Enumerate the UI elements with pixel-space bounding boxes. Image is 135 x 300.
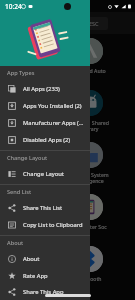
staticText: About bbox=[7, 239, 24, 247]
staticText: Apps You Installed (2) bbox=[23, 102, 82, 110]
staticText: Change Layout bbox=[7, 154, 48, 162]
staticText: All Apps (233) bbox=[23, 85, 60, 93]
staticText: Share This App bbox=[23, 288, 64, 296]
staticText: Bluetooth bbox=[77, 275, 102, 282]
staticText: Disabled Apps (2) bbox=[23, 136, 71, 144]
button[interactable]: Disabled Apps (2) bbox=[0, 131, 90, 148]
button[interactable]: About bbox=[0, 250, 90, 267]
button[interactable]: Copy List to Clipboard bbox=[0, 216, 90, 233]
button[interactable]: Share This App bbox=[0, 284, 90, 300]
button[interactable]: All Apps (233) bbox=[0, 80, 90, 97]
button[interactable]: Bluetooth bbox=[0, 242, 135, 294]
button[interactable]: Change Layout bbox=[0, 165, 90, 182]
staticText: Rate App bbox=[23, 272, 48, 280]
staticText: About bbox=[23, 255, 40, 263]
button[interactable]: Rate App bbox=[0, 267, 90, 284]
staticText: Send List bbox=[7, 188, 32, 196]
staticText: DESC bbox=[85, 20, 99, 27]
staticText: Android System Intelligence bbox=[70, 171, 109, 184]
button[interactable]: Android Shared Library bbox=[0, 86, 135, 138]
button[interactable]: Manufacturer Apps (231) bbox=[0, 114, 90, 131]
button[interactable]: Share This List bbox=[0, 199, 90, 216]
button[interactable]: Apps You Installed (2) bbox=[0, 97, 90, 114]
staticText: App-Lister Soc bbox=[72, 223, 107, 230]
staticText: Android Shared Library bbox=[71, 119, 109, 132]
staticText: Copy List to Clipboard bbox=[23, 221, 83, 229]
button[interactable]: DESC bbox=[76, 17, 108, 30]
staticText: Android Auto bbox=[73, 67, 106, 74]
staticText: Share This List bbox=[23, 204, 63, 212]
staticText: 10:24 bbox=[5, 2, 22, 11]
button[interactable]: Android Auto bbox=[0, 34, 135, 86]
staticText: App Types bbox=[7, 69, 35, 77]
staticText: Change Layout bbox=[23, 170, 64, 178]
staticText: Manufacturer Apps (231) bbox=[23, 119, 86, 127]
button[interactable]: App-Lister Soc bbox=[0, 190, 135, 242]
button[interactable]: Android System Intelligence bbox=[0, 138, 135, 190]
